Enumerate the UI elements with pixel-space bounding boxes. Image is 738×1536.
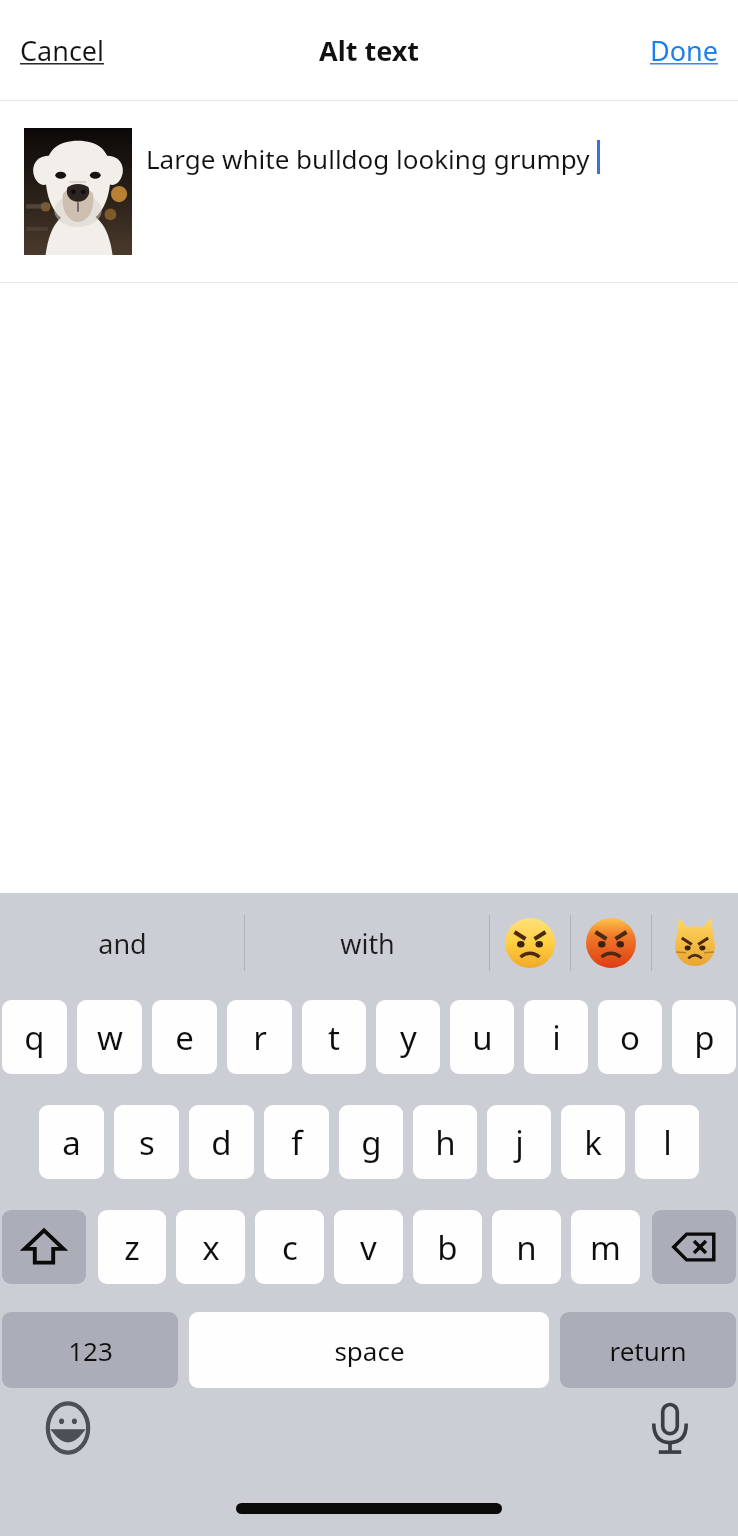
button[interactable]: Cancel [8,22,117,79]
button[interactable]: i [524,1000,588,1074]
staticText: y [400,1015,417,1060]
button[interactable]: Done [638,22,730,79]
staticText: g [361,1120,382,1165]
button[interactable]: space [189,1312,549,1388]
button[interactable]: r [227,1000,292,1074]
button[interactable]: s [114,1105,179,1179]
button[interactable]: 123 [2,1312,178,1388]
staticText: d [211,1120,232,1165]
button[interactable]: p [672,1000,736,1074]
staticText: u [472,1015,493,1060]
staticText: e [175,1015,194,1060]
button[interactable]: Shift [2,1210,86,1284]
button[interactable]: Dictate [642,1400,698,1456]
button[interactable]: k [561,1105,625,1179]
staticText: n [516,1225,537,1270]
staticText: k [584,1120,602,1165]
button[interactable]: Emoji suggestion [652,893,738,993]
staticText: c [282,1225,298,1270]
button[interactable]: d [189,1105,254,1179]
staticText: t [328,1015,340,1060]
button[interactable]: f [264,1105,329,1179]
button[interactable]: Emoji suggestion [571,893,651,993]
staticText: a [62,1120,81,1165]
staticText: return [609,1333,687,1368]
button[interactable]: z [98,1210,166,1284]
button[interactable]: t [302,1000,366,1074]
button[interactable]: a [39,1105,104,1179]
button[interactable]: Emoji keyboard [40,1400,96,1456]
button[interactable]: m [571,1210,640,1284]
staticText: x [202,1225,220,1270]
button[interactable]: y [376,1000,440,1074]
staticText: j [515,1120,524,1165]
staticText: v [360,1225,377,1270]
staticText: s [139,1120,155,1165]
button[interactable]: u [450,1000,514,1074]
staticText: Cancel [20,32,105,69]
staticText: space [334,1333,405,1368]
button[interactable]: Backspace [652,1210,736,1284]
button[interactable]: g [339,1105,403,1179]
button[interactable]: l [635,1105,699,1179]
button[interactable]: e [152,1000,217,1074]
staticText: q [24,1015,45,1060]
button[interactable]: o [598,1000,662,1074]
button[interactable]: b [413,1210,482,1284]
staticText: p [694,1015,715,1060]
staticText: h [435,1120,456,1165]
button[interactable]: Large white bulldog looking grumpy [0,101,738,282]
staticText: o [620,1015,640,1060]
button[interactable]: x [176,1210,245,1284]
button[interactable]: with [245,893,489,993]
staticText: i [552,1015,561,1060]
button[interactable]: w [77,1000,142,1074]
staticText: Alt text [319,32,420,69]
staticText: w [97,1015,123,1060]
staticText: 123 [68,1333,113,1368]
staticText: b [437,1225,458,1270]
button[interactable]: c [255,1210,324,1284]
staticText: Large white bulldog looking grumpy [146,141,590,176]
button[interactable]: j [487,1105,551,1179]
staticText: z [124,1225,140,1270]
button[interactable]: Emoji suggestion [490,893,570,993]
staticText: m [590,1225,621,1270]
staticText: and [98,925,147,962]
button[interactable]: and [0,893,244,993]
button[interactable]: return [560,1312,736,1388]
staticText: f [291,1120,303,1165]
button[interactable]: v [334,1210,403,1284]
staticText: r [253,1015,267,1060]
button[interactable]: h [413,1105,477,1179]
staticText: with [340,925,395,962]
button[interactable]: n [492,1210,561,1284]
staticText: l [663,1120,672,1165]
staticText: Done [650,32,718,69]
button[interactable]: q [2,1000,67,1074]
